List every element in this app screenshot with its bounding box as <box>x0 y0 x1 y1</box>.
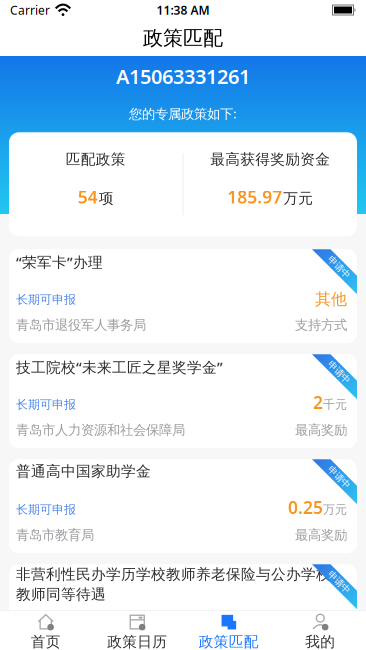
staticText: 政策匹配 <box>143 26 223 50</box>
staticText: 匹配政策 <box>66 150 126 168</box>
button[interactable]: 我的 <box>274 610 366 650</box>
staticText: A15063331261 <box>116 63 250 90</box>
button[interactable]: 非营利性民办学历学校教师养老保险与公办学校 <box>9 564 357 650</box>
staticText: 2 <box>313 391 323 414</box>
staticText: 首页 <box>31 633 61 650</box>
button[interactable]: 首页 <box>0 610 91 650</box>
staticText: 申请中 <box>326 576 353 588</box>
staticText: 最高奖励 <box>295 527 347 543</box>
staticText: 项 <box>99 189 114 207</box>
staticText: 申请中 <box>326 366 353 378</box>
staticText: 教师同等待遇 <box>16 585 106 603</box>
staticText: 最高获得奖励资金 <box>210 150 330 168</box>
staticText: 青岛市退役军人事务局 <box>16 317 146 333</box>
staticText: 0.25 <box>288 496 323 519</box>
staticText: 长期可申报 <box>16 397 76 412</box>
staticText: 青岛市教育局 <box>16 527 94 543</box>
staticText: 54 <box>78 185 98 208</box>
staticText: 万元 <box>323 502 347 517</box>
staticText: Carrier <box>10 2 50 18</box>
staticText: 政策匹配 <box>199 633 259 650</box>
staticText: 长期可申报 <box>16 502 76 517</box>
staticText: 最高奖励 <box>295 422 347 438</box>
staticText: 万元 <box>283 189 313 207</box>
staticText: 申请中 <box>326 471 353 483</box>
staticText: 长期可申报 <box>16 292 76 307</box>
button[interactable]: 技工院校“未来工匠之星奖学金” <box>9 354 357 448</box>
staticText: 其他 <box>315 289 347 309</box>
staticText: 政策日历 <box>107 633 167 650</box>
staticText: 支持方式 <box>295 317 347 333</box>
staticText: 千元 <box>323 397 347 412</box>
staticText: 技工院校“未来工匠之星奖学金” <box>16 357 223 377</box>
staticText: 您的专属政策如下: <box>129 105 237 122</box>
button[interactable]: 普通高中国家助学金 <box>9 459 357 553</box>
staticText: 11:38 AM <box>156 2 209 18</box>
button[interactable]: “荣军卡”办理 <box>9 249 357 343</box>
button[interactable]: 政策日历 <box>91 610 183 650</box>
staticText: 非营利性民办学历学校教师养老保险与公办学校 <box>16 565 331 583</box>
staticText: 185.97 <box>227 185 282 208</box>
staticText: 普通高中国家助学金 <box>16 462 151 480</box>
staticText: “荣军卡”办理 <box>16 252 103 272</box>
staticText: 申请中 <box>326 261 353 273</box>
staticText: 青岛市人力资源和社会保障局 <box>16 422 185 438</box>
staticText: 我的 <box>305 633 335 650</box>
button[interactable]: 政策匹配 <box>183 610 274 650</box>
